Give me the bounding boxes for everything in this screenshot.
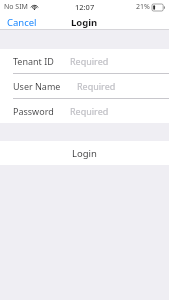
staticText: Login — [72, 147, 97, 160]
staticText: 21% — [136, 2, 150, 12]
staticText: 12:07 — [75, 2, 95, 12]
staticText: Password — [13, 105, 54, 117]
staticText: User Name — [13, 80, 61, 92]
staticText: No SIM — [4, 2, 28, 12]
button[interactable]: Cancel — [0, 14, 44, 30]
button[interactable]: Tenant ID — [0, 49, 169, 74]
button[interactable]: Password — [0, 99, 169, 123]
staticText: Required — [70, 105, 159, 117]
staticText: Cancel — [7, 16, 37, 29]
staticText: Tenant ID — [13, 55, 54, 67]
staticText: Required — [77, 80, 159, 92]
staticText: Required — [70, 55, 159, 67]
button[interactable]: User Name — [0, 74, 169, 99]
staticText: Login — [71, 16, 98, 29]
button[interactable]: Login — [0, 141, 169, 165]
